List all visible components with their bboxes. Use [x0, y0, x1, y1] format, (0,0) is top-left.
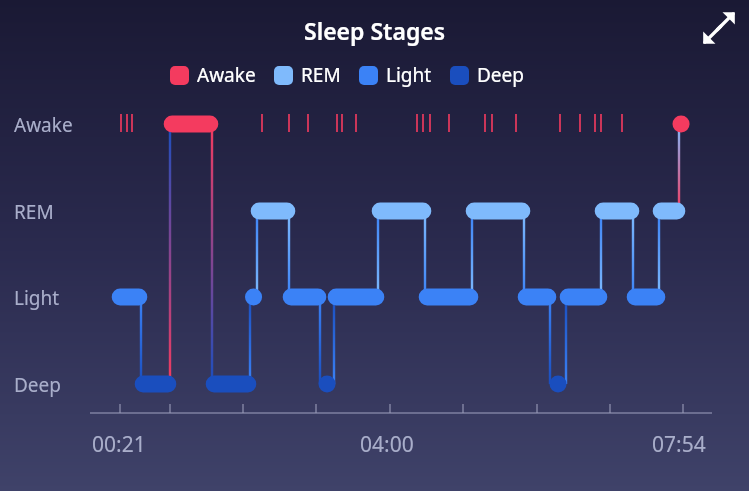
staticText: Awake [14, 112, 73, 138]
staticText: 04:00 [360, 430, 414, 459]
staticText: REM [14, 199, 54, 225]
button[interactable]: Expand chart [697, 6, 741, 50]
button[interactable]: Awake [170, 62, 256, 88]
button[interactable]: REM [274, 62, 341, 88]
staticText: 07:54 [652, 430, 706, 459]
staticText: 00:21 [92, 430, 146, 459]
staticText: Awake [197, 62, 256, 88]
staticText: REM [301, 62, 341, 88]
staticText: Sleep Stages [304, 15, 446, 46]
staticText: Light [14, 285, 60, 311]
button[interactable]: Deep [450, 62, 524, 88]
staticText: Light [386, 62, 432, 88]
button[interactable]: Light [359, 62, 432, 88]
staticText: Deep [477, 62, 524, 88]
staticText: Deep [14, 372, 61, 398]
